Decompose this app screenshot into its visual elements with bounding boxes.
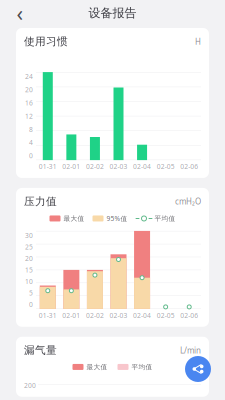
staticText: 0 (29, 151, 33, 160)
button[interactable]: 分享 (185, 356, 211, 382)
staticText: 01-31 (39, 311, 57, 320)
staticText: L/min (180, 345, 201, 356)
staticText: 压力值 (24, 195, 57, 208)
staticText: 02-02 (86, 311, 104, 320)
staticText: ‹ (16, 0, 23, 27)
staticText: 漏气量 (24, 344, 57, 357)
staticText: 10 (25, 277, 33, 286)
staticText: 最大值 (86, 363, 107, 371)
staticText: 最大值 (63, 214, 84, 223)
staticText: 25 (25, 242, 33, 251)
staticText: 8 (29, 125, 33, 134)
staticText: 02-05 (157, 311, 175, 320)
staticText: 5 (29, 288, 33, 297)
staticText: 设备报告 (88, 6, 136, 20)
staticText: 平均值 (154, 214, 175, 223)
staticText: 20 (25, 254, 33, 263)
staticText: 95%值 (106, 214, 127, 223)
staticText: 15 (25, 265, 33, 274)
staticText: 12 (25, 112, 33, 121)
staticText: 01-31 (39, 162, 57, 171)
staticText: 02-03 (109, 162, 127, 171)
staticText: 02-02 (86, 162, 104, 171)
staticText: 16 (25, 98, 33, 107)
staticText: 200 (24, 381, 36, 390)
staticText: 02-06 (180, 162, 198, 171)
staticText: 20 (25, 85, 33, 94)
staticText: 02-05 (157, 162, 175, 171)
staticText: 24 (25, 72, 33, 81)
staticText: 30 (25, 231, 33, 240)
button[interactable]: 返回 (8, 2, 32, 24)
staticText: 4 (29, 138, 33, 147)
staticText: 02-01 (62, 162, 80, 171)
staticText: 02-04 (133, 162, 151, 171)
staticText: H (195, 36, 201, 47)
staticText: 0 (29, 300, 33, 309)
staticText: 平均值 (131, 363, 152, 371)
staticText: 02-06 (180, 311, 198, 320)
staticText: 02-04 (133, 311, 151, 320)
staticText: 使用习惯 (24, 35, 68, 48)
staticText: 02-03 (109, 311, 127, 320)
staticText: cmH₂O (175, 196, 201, 207)
staticText: 02-01 (62, 311, 80, 320)
